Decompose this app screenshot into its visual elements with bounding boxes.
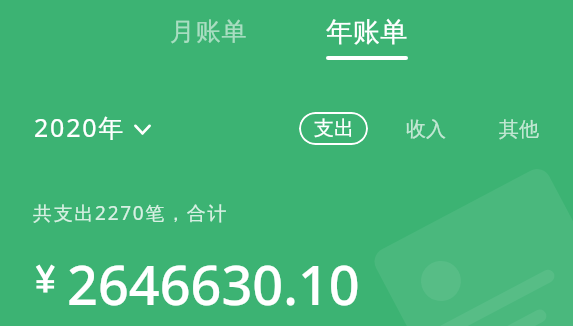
- staticText: 共支出2270笔，合计: [33, 200, 229, 226]
- staticText: 2020年: [34, 110, 126, 144]
- staticText: 月账单: [170, 16, 248, 47]
- staticText: 年账单: [326, 15, 407, 49]
- button[interactable]: 支出: [299, 112, 368, 145]
- button[interactable]: 收入: [391, 110, 461, 148]
- staticText: 2646630.10: [67, 247, 360, 321]
- staticText: 其他: [499, 117, 539, 142]
- staticText: 收入: [406, 117, 446, 142]
- button[interactable]: 年账单: [304, 4, 429, 66]
- staticText: 支出: [314, 116, 354, 141]
- button[interactable]: 其他: [484, 110, 554, 148]
- button[interactable]: 选择年份 2020年: [28, 106, 157, 148]
- button[interactable]: 月账单: [146, 5, 271, 57]
